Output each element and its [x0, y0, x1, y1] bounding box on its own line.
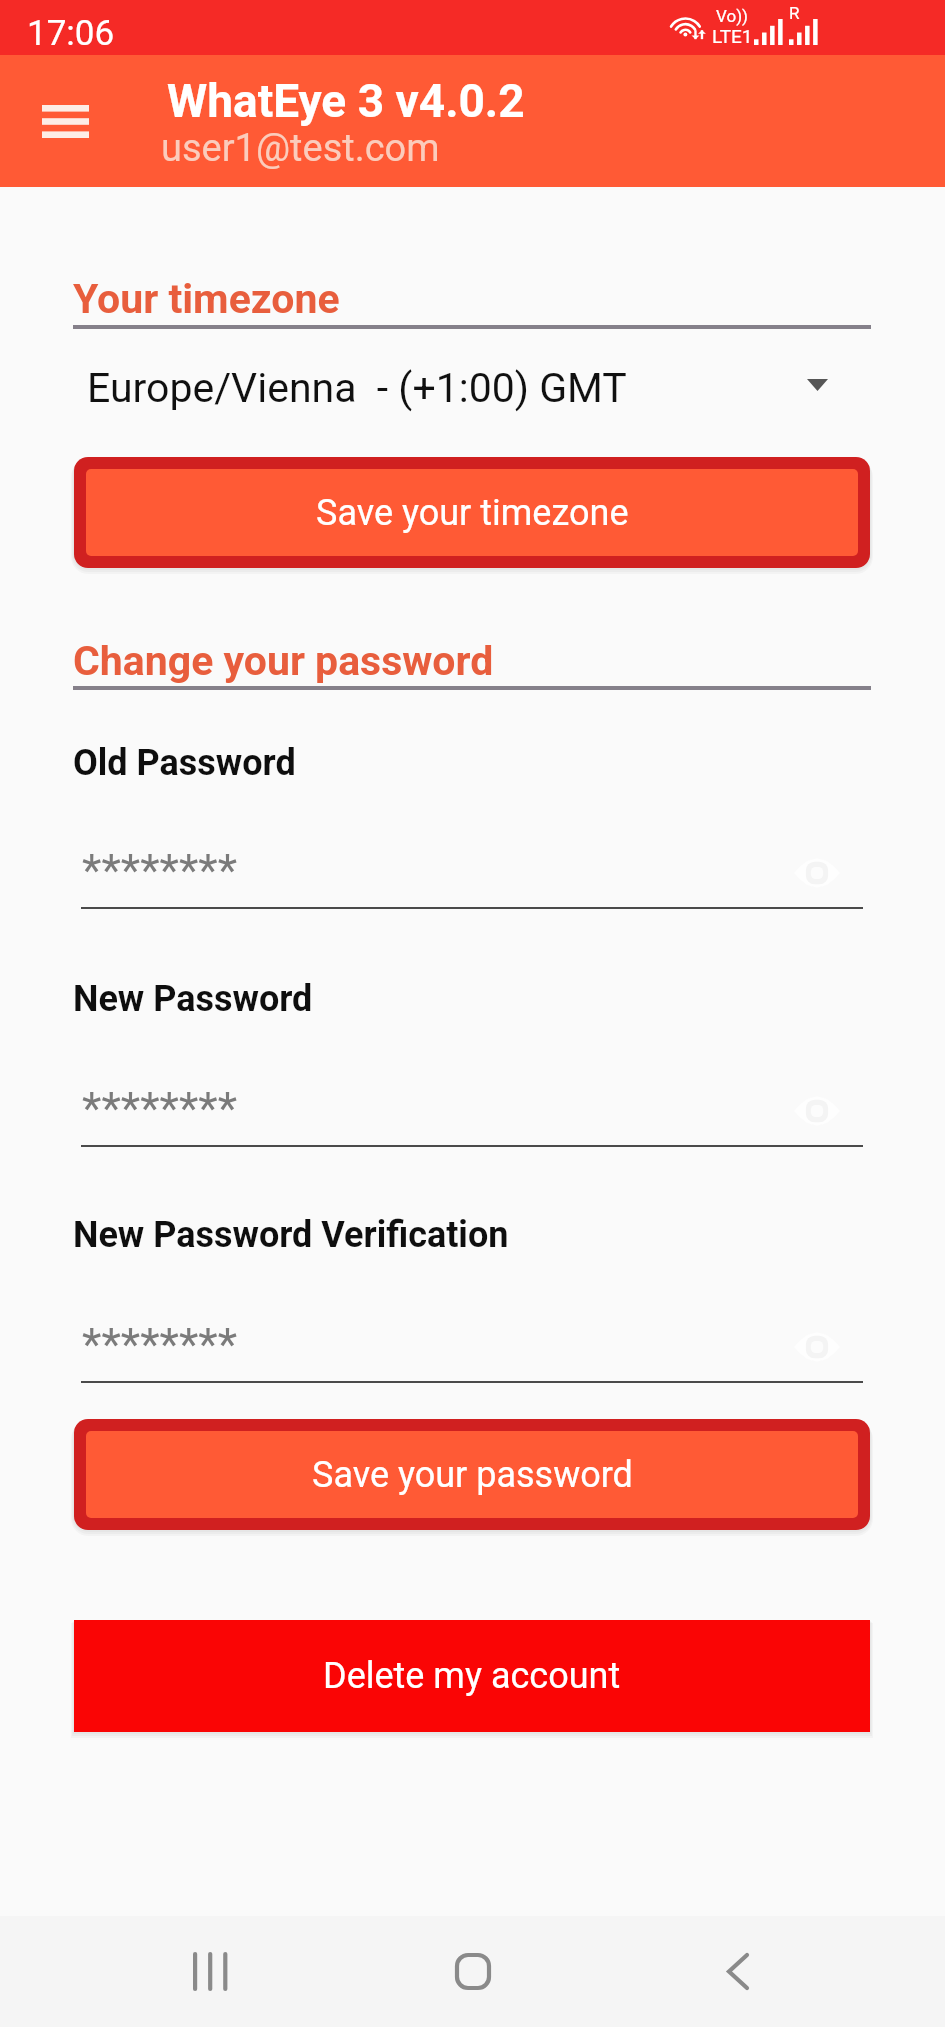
- button[interactable]: Recent apps: [159, 1921, 259, 2021]
- button[interactable]: Delete my account: [74, 1620, 870, 1732]
- staticText: Delete my account: [323, 1655, 621, 1697]
- staticText: R: [789, 3, 800, 23]
- staticText: WhatEye 3 v4.0.2: [167, 74, 525, 128]
- staticText: ********: [82, 1082, 238, 1135]
- staticText: ********: [82, 1318, 238, 1371]
- staticText: LTE1: [712, 25, 753, 47]
- button[interactable]: Back: [688, 1921, 788, 2021]
- staticText: Old Password: [73, 742, 296, 784]
- staticText: Europe/Vienna - (+1:00) GMT: [87, 364, 627, 412]
- staticText: user1@test.com: [161, 126, 440, 171]
- staticText: New Password: [73, 978, 313, 1020]
- button[interactable]: Home: [423, 1921, 523, 2021]
- staticText: Change your password: [73, 637, 494, 685]
- staticText: Vo)): [716, 6, 748, 26]
- staticText: 17:06: [27, 13, 115, 54]
- staticText: ********: [82, 844, 238, 897]
- staticText: Save your password: [312, 1454, 633, 1496]
- button[interactable]: Open navigation menu: [22, 78, 108, 164]
- staticText: Your timezone: [73, 275, 340, 323]
- staticText: Save your timezone: [316, 492, 629, 534]
- staticText: New Password Verification: [73, 1214, 509, 1256]
- button[interactable]: Save your timezone: [74, 457, 870, 568]
- button[interactable]: Europe/Vienna - (+1:00) GMT: [73, 356, 871, 428]
- button[interactable]: Save your password: [74, 1419, 870, 1530]
